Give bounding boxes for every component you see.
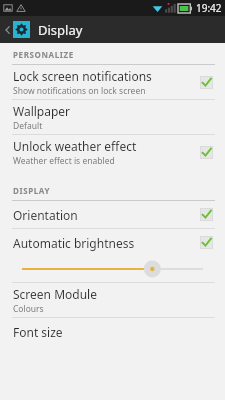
- staticText: PERSONALIZE: [13, 49, 74, 60]
- staticText: Lock screen notifications: [13, 68, 152, 84]
- button[interactable]: Toggle setting: [200, 76, 213, 89]
- staticText: Default: [13, 120, 43, 132]
- button[interactable]: Screen Module: [0, 283, 225, 317]
- button[interactable]: Unlock weather effect: [0, 135, 225, 169]
- button[interactable]: Font size: [0, 318, 225, 345]
- staticText: Show notifications on lock screen: [13, 85, 146, 97]
- button[interactable]: Toggle setting: [200, 208, 213, 221]
- staticText: DISPLAY: [13, 185, 51, 196]
- staticText: Weather effect is enabled: [13, 155, 115, 167]
- button[interactable]: Brightness level: [0, 256, 225, 282]
- button[interactable]: Toggle setting: [200, 146, 213, 159]
- button[interactable]: Automatic brightness: [0, 229, 225, 256]
- staticText: Font size: [13, 324, 63, 340]
- staticText: Automatic brightness: [13, 235, 135, 251]
- staticText: Display: [38, 21, 83, 39]
- button[interactable]: Toggle setting: [200, 236, 213, 249]
- staticText: Orientation: [13, 207, 78, 223]
- staticText: Wallpaper: [13, 103, 71, 119]
- button[interactable]: Orientation: [0, 201, 225, 228]
- staticText: Screen Module: [13, 286, 97, 302]
- staticText: 19:42: [196, 1, 222, 15]
- button[interactable]: Lock screen notifications: [0, 65, 225, 99]
- button[interactable]: Wallpaper: [0, 100, 225, 134]
- button[interactable]: Back to settings: [0, 16, 225, 43]
- staticText: Colours: [13, 303, 44, 315]
- staticText: Unlock weather effect: [13, 138, 137, 154]
